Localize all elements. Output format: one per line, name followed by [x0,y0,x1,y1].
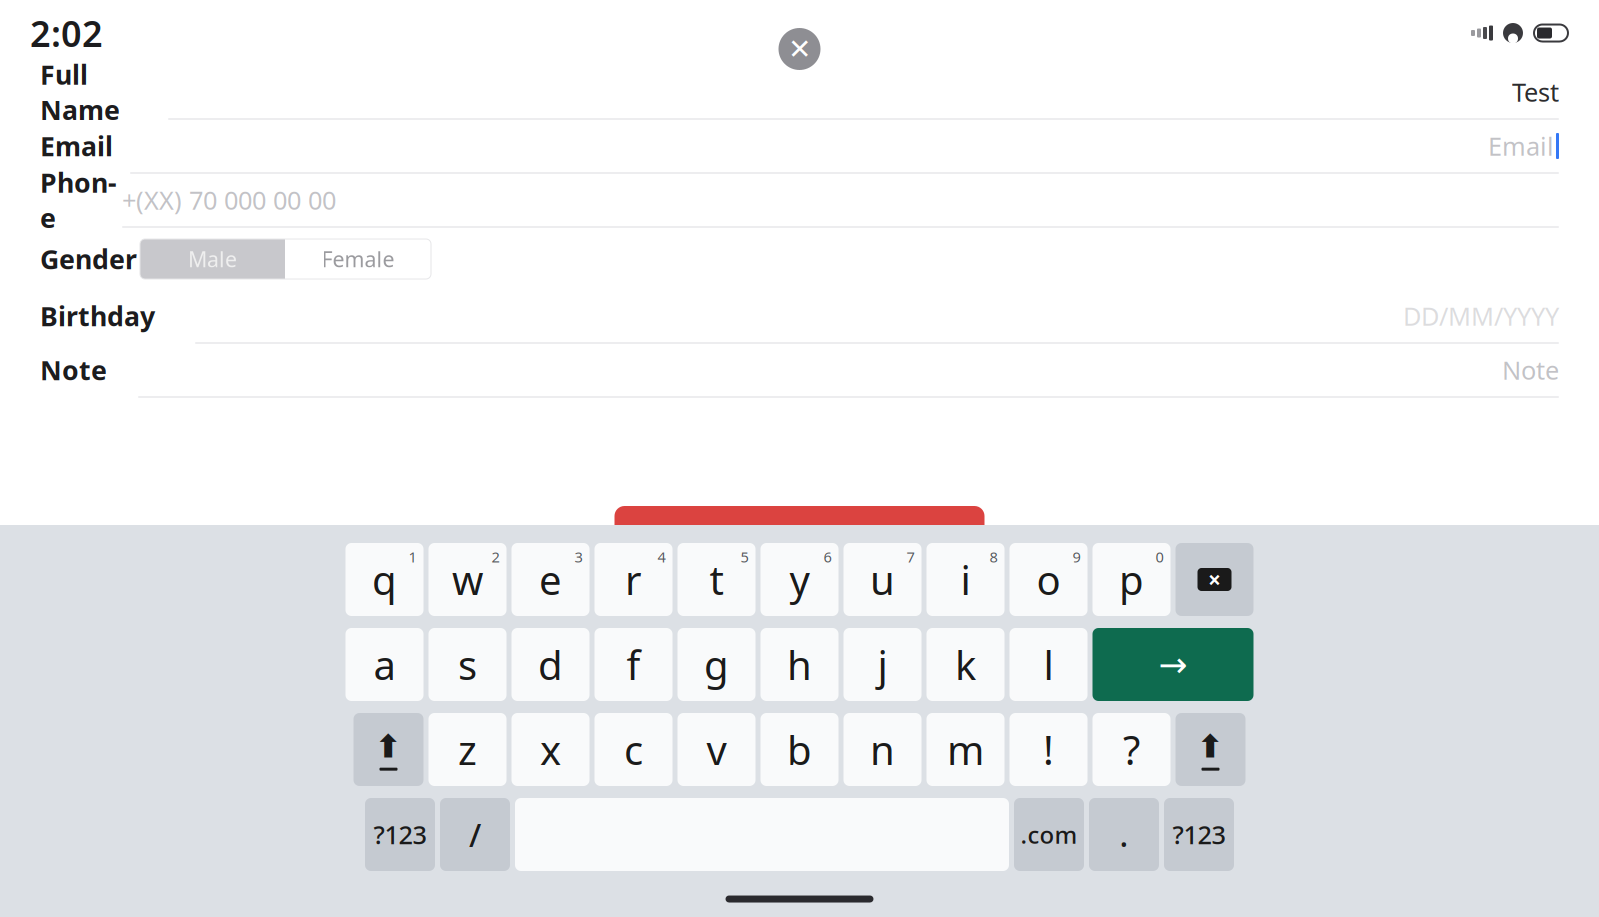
button[interactable]: Male [140,239,285,279]
staticText: → [1158,645,1187,684]
button[interactable]: Shift [353,713,423,786]
button[interactable]: Delete [1175,543,1253,616]
staticText: v [706,723,726,776]
staticText: ⬆ [1197,728,1224,765]
staticText: 0 [1155,547,1163,566]
staticText: u [870,553,895,606]
staticText: y [789,553,809,606]
button[interactable]: z [428,713,506,786]
button[interactable]: s [428,628,506,701]
staticText: Female [321,245,394,273]
button[interactable]: i [926,543,1004,616]
button[interactable]: Save [614,506,984,570]
button[interactable]: t [677,543,755,616]
staticText: × [1208,564,1221,594]
button[interactable]: ? [1092,713,1170,786]
staticText: q [372,553,397,606]
button[interactable]: n [843,713,921,786]
button[interactable]: p [1092,543,1170,616]
button[interactable]: r [594,543,672,616]
staticText: s [458,638,477,691]
staticText: d [538,638,563,691]
button[interactable]: u [843,543,921,616]
button[interactable]: k [926,628,1004,701]
button[interactable]: w [428,543,506,616]
staticText: c [624,723,643,776]
staticText: 3 [574,547,582,566]
button[interactable]: Numbers [1164,798,1234,871]
button[interactable]: Numbers [365,798,435,871]
button[interactable]: b [760,713,838,786]
button[interactable]: m [926,713,1004,786]
button[interactable]: h [760,628,838,701]
staticText: 5 [740,547,748,566]
button[interactable]: Dot com [1014,798,1084,871]
button[interactable]: Email [130,124,1559,168]
button[interactable]: g [677,628,755,701]
button[interactable]: Slash [440,798,510,871]
staticText: Note [1502,353,1559,387]
button[interactable]: c [594,713,672,786]
button[interactable]: +(XX) 70 000 00 00 [122,178,1559,222]
button[interactable]: f [594,628,672,701]
staticText: e [539,553,562,606]
staticText: f [626,638,640,691]
staticText: Birthday [40,298,155,334]
staticText: .com [1020,819,1077,850]
staticText: ? [1123,723,1140,776]
staticText: Gender [40,241,137,277]
button[interactable]: y [760,543,838,616]
button[interactable]: x [511,713,589,786]
staticText: 4 [657,547,665,566]
staticText: l [1043,638,1053,691]
button[interactable]: Return [1092,628,1253,701]
button[interactable]: d [511,628,589,701]
button[interactable]: DD/MM/YYYY [195,294,1559,338]
staticText: 9 [1072,547,1080,566]
button[interactable]: Shift [1175,713,1245,786]
staticText: z [458,723,477,776]
staticText: Phone [40,165,117,235]
staticText: k [955,638,976,691]
staticText: b [787,723,812,776]
button[interactable]: Note [138,348,1559,392]
staticText: x [540,723,561,776]
button[interactable]: e [511,543,589,616]
staticText: / [469,813,481,856]
staticText: Note [40,352,107,388]
staticText: ?123 [373,818,426,851]
staticText: 8 [989,547,997,566]
button[interactable]: Close [778,28,820,70]
staticText: 7 [906,547,914,566]
staticText: 1 [408,547,416,566]
button[interactable]: l [1009,628,1087,701]
staticText: Email [40,128,113,164]
button[interactable]: Female [285,239,431,279]
staticText: t [709,553,723,606]
staticText: n [870,723,895,776]
staticText: Male [188,245,237,273]
staticText: j [877,638,887,691]
staticText: ⬆ [375,728,402,765]
staticText: r [625,553,642,606]
staticText: 2:02 [30,9,103,57]
button[interactable]: ! [1009,713,1087,786]
button[interactable]: v [677,713,755,786]
staticText: ?123 [1172,818,1225,851]
button[interactable]: q [345,543,423,616]
staticText: w [452,553,483,606]
staticText: 2 [491,547,499,566]
staticText: g [704,638,729,691]
staticText: i [960,553,970,606]
button[interactable]: j [843,628,921,701]
staticText: o [1036,553,1060,606]
button[interactable]: Test [168,70,1559,114]
staticText: Save [766,518,832,557]
staticText: Test [1512,75,1559,109]
button[interactable]: o [1009,543,1087,616]
button[interactable]: Period [1089,798,1159,871]
button[interactable]: a [345,628,423,701]
staticText: ! [1043,723,1054,776]
staticText: Full Name [40,57,120,127]
